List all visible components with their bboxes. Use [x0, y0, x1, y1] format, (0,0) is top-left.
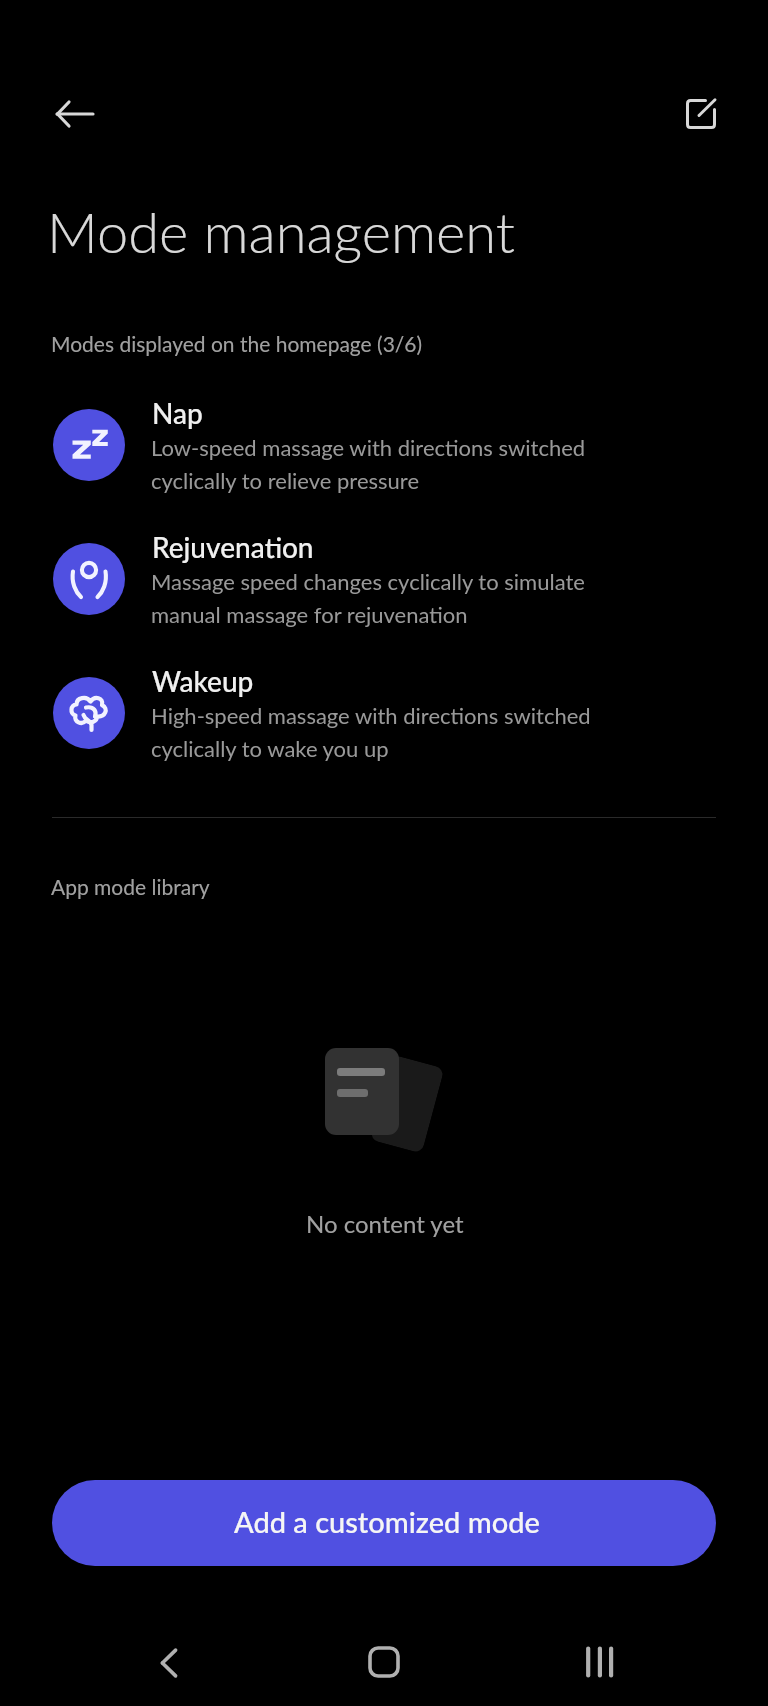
staticText: High-speed massage with directions switc…: [151, 702, 591, 762]
button[interactable]: Home: [336, 1614, 432, 1706]
button[interactable]: Edit: [665, 78, 737, 150]
staticText: Nap: [152, 396, 203, 430]
staticText: Massage speed changes cyclically to simu…: [151, 568, 585, 628]
button[interactable]: Back: [39, 78, 111, 150]
button[interactable]: Add a customized mode: [52, 1480, 716, 1566]
button[interactable]: Rejuvenation: [0, 530, 768, 652]
staticText: Rejuvenation: [152, 530, 314, 564]
button[interactable]: Nap: [0, 396, 768, 518]
staticText: App mode library: [51, 874, 210, 899]
staticText: Wakeup: [152, 664, 254, 698]
staticText: Modes displayed on the homepage (3/6): [51, 331, 423, 356]
button[interactable]: Wakeup: [0, 664, 768, 786]
staticText: Low-speed massage with directions switch…: [151, 434, 586, 494]
staticText: Add a customized mode: [234, 1504, 540, 1539]
button[interactable]: Recent apps: [552, 1614, 648, 1706]
button[interactable]: Back: [121, 1615, 217, 1706]
staticText: No content yet: [306, 1209, 464, 1238]
staticText: Mode management: [47, 198, 515, 265]
